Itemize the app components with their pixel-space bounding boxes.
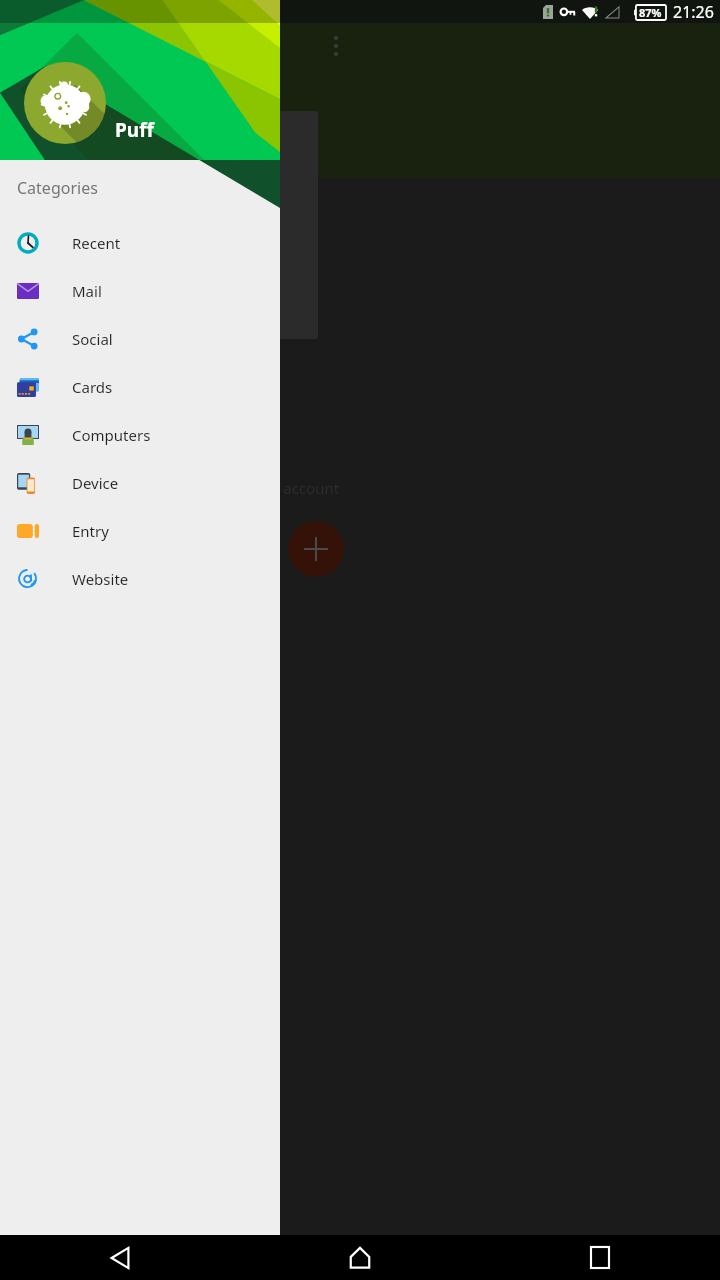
staticText: Device	[72, 473, 119, 493]
button[interactable]: Entry	[0, 507, 280, 555]
button[interactable]: Recent	[0, 219, 280, 267]
button[interactable]: Home	[330, 1235, 390, 1280]
button[interactable]: Computers	[0, 411, 280, 459]
staticText: Social	[72, 329, 113, 349]
button[interactable]: Back	[90, 1235, 150, 1280]
button[interactable]: Add	[288, 521, 344, 577]
staticText: Puff	[115, 117, 154, 143]
staticText: Cards	[72, 377, 113, 397]
staticText: Categories	[17, 177, 98, 199]
button[interactable]: Social	[0, 315, 280, 363]
button[interactable]: Recents	[570, 1235, 630, 1280]
staticText: Bank account	[244, 478, 340, 498]
button[interactable]: Mail	[0, 267, 280, 315]
button[interactable]: More options	[327, 36, 345, 60]
staticText: Entry	[72, 521, 109, 541]
staticText: Website	[72, 569, 129, 589]
staticText: Computers	[72, 425, 151, 445]
staticText: 21:26	[673, 1, 714, 23]
staticText: 87%	[639, 5, 662, 20]
button[interactable]: Website	[0, 555, 280, 603]
staticText: Recent	[72, 233, 121, 253]
button[interactable]: Cards	[0, 363, 280, 411]
staticText: Mail	[72, 281, 102, 301]
button[interactable]: Device	[0, 459, 280, 507]
button[interactable]	[14, 111, 318, 339]
